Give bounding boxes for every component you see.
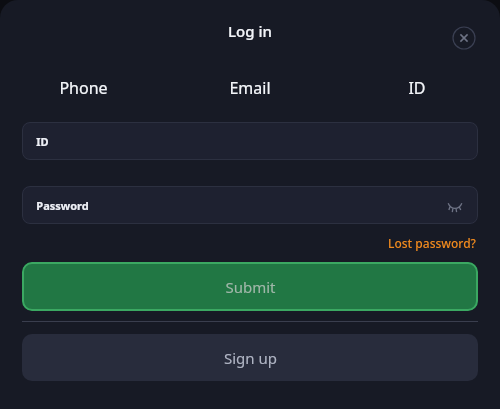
staticText: Sign up: [224, 348, 277, 368]
button[interactable]: ID: [22, 122, 478, 160]
staticText: Log in: [228, 21, 272, 41]
staticText: ID: [36, 134, 49, 149]
button[interactable]: Sign up: [22, 334, 478, 381]
button[interactable]: Password: [22, 186, 478, 224]
staticText: Phone: [59, 77, 108, 99]
staticText: Password: [36, 198, 89, 213]
button[interactable]: Lost password?: [386, 233, 478, 253]
button[interactable]: ID: [333, 72, 500, 106]
button[interactable]: Email: [166, 72, 333, 106]
button[interactable]: Close: [450, 24, 478, 52]
staticText: ID: [408, 77, 426, 99]
staticText: Lost password?: [388, 235, 476, 251]
button[interactable]: Phone: [0, 72, 166, 106]
button[interactable]: Submit: [22, 262, 478, 311]
staticText: Email: [229, 77, 271, 99]
button[interactable]: Show password: [444, 194, 466, 216]
staticText: Submit: [225, 277, 276, 297]
